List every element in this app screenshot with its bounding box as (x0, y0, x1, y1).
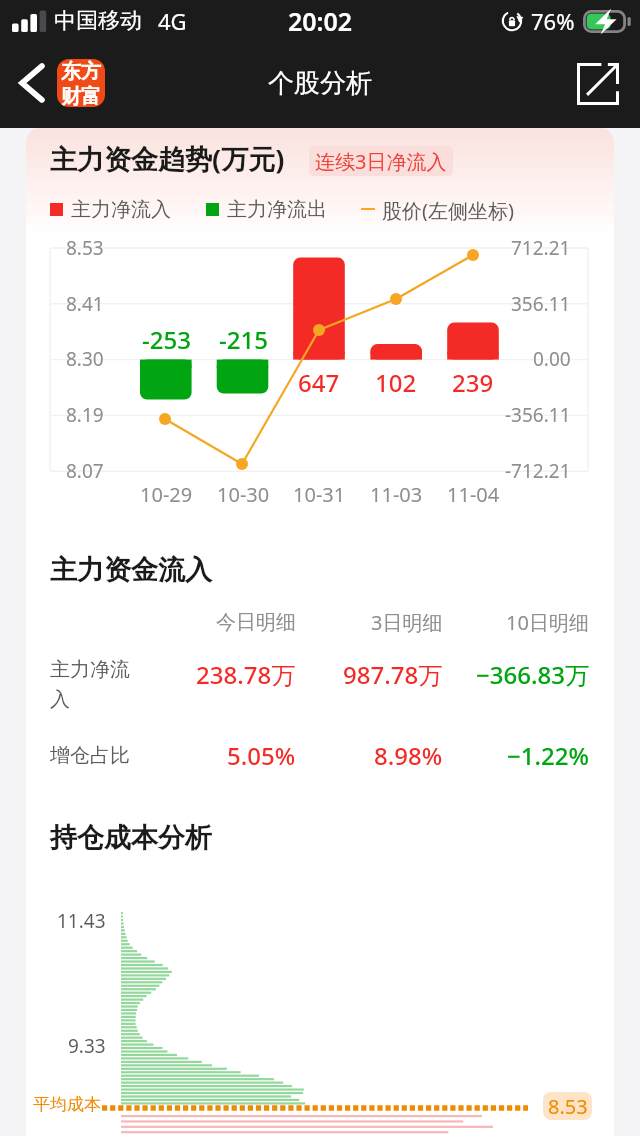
staticText: 主力资金流入 (50, 553, 212, 587)
staticText: 8.07 (66, 458, 104, 484)
staticText: −366.83万 (476, 658, 589, 691)
staticText: −1.22% (507, 739, 589, 772)
button[interactable]: Share (569, 55, 627, 113)
staticText: 8.53 (548, 1093, 588, 1120)
staticText: 中国移动 (54, 7, 142, 35)
staticText: 10-30 (217, 481, 270, 508)
staticText: 8.53 (66, 235, 104, 261)
staticText: 今日明细 (216, 610, 296, 635)
staticText: 股价(左侧坐标) (382, 197, 514, 221)
staticText: 东方 (61, 59, 101, 84)
staticText: 9.33 (68, 1033, 106, 1059)
staticText: 财富 (61, 84, 101, 107)
staticText: 102 (375, 366, 417, 399)
staticText: 11-04 (447, 481, 500, 508)
button[interactable]: 东方 (57, 59, 105, 107)
staticText: 0.00 (533, 346, 571, 372)
staticText: 20:02 (288, 4, 353, 38)
staticText: 持仓成本分析 (50, 821, 212, 855)
staticText: 8.30 (66, 346, 104, 372)
staticText: 主力资金趋势(万元) (50, 140, 285, 177)
staticText: 11.43 (57, 908, 106, 934)
staticText: 4G (158, 6, 187, 36)
staticText: -253 (142, 323, 191, 356)
staticText: 647 (298, 366, 340, 399)
staticText: -356.11 (505, 402, 571, 428)
staticText: 10-29 (140, 481, 193, 508)
staticText: 主力净流入 (50, 657, 140, 712)
staticText: 11-03 (370, 481, 423, 508)
staticText: 5.05% (227, 739, 296, 772)
staticText: 8.19 (66, 402, 104, 428)
staticText: 增仓占比 (50, 743, 130, 768)
staticText: 10-31 (293, 481, 346, 508)
staticText: 712.21 (511, 235, 571, 261)
staticText: 主力净流入 (71, 197, 171, 221)
staticText: -712.21 (505, 458, 571, 484)
staticText: 主力净流出 (227, 197, 327, 221)
staticText: 连续3日净流入 (315, 148, 447, 175)
staticText: -215 (219, 323, 268, 356)
staticText: 8.41 (66, 291, 104, 317)
staticText: 239 (452, 366, 494, 399)
staticText: 8.98% (374, 739, 443, 772)
staticText: 3日明细 (371, 609, 443, 636)
staticText: 987.78万 (343, 658, 443, 691)
staticText: 10日明细 (506, 609, 589, 636)
staticText: 76% (531, 6, 575, 36)
staticText: 平均成本 (33, 1094, 101, 1115)
staticText: 个股分析 (268, 67, 372, 100)
button[interactable]: Back (6, 57, 58, 109)
staticText: 238.78万 (196, 658, 296, 691)
staticText: 356.11 (511, 291, 571, 317)
